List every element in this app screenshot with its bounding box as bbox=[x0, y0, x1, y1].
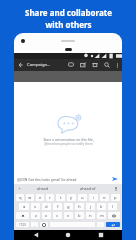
button[interactable]: n bbox=[86, 212, 95, 219]
button[interactable]: s bbox=[31, 203, 40, 210]
staticText: x bbox=[45, 213, 48, 219]
button[interactable]: Send bbox=[111, 175, 119, 183]
button[interactable]: m bbox=[97, 212, 106, 219]
staticText: p bbox=[114, 195, 117, 201]
staticText: g bbox=[67, 204, 70, 210]
staticText: a bbox=[23, 204, 26, 210]
staticText: ahead of bbox=[80, 186, 96, 191]
button[interactable]: e bbox=[36, 194, 44, 201]
button[interactable]: ahead bbox=[23, 184, 63, 193]
button[interactable]: w bbox=[26, 194, 34, 201]
button[interactable]: g bbox=[64, 203, 73, 210]
staticText: with others bbox=[45, 19, 92, 30]
button[interactable]: i bbox=[89, 194, 98, 201]
button[interactable]: x bbox=[42, 212, 51, 219]
button[interactable]: p bbox=[111, 194, 120, 201]
staticText: r bbox=[49, 195, 51, 201]
button[interactable]: d bbox=[42, 203, 51, 210]
staticText: q bbox=[19, 195, 22, 201]
button[interactable]: k bbox=[97, 203, 106, 210]
staticText: u bbox=[81, 195, 84, 201]
staticText: n bbox=[89, 213, 92, 219]
button[interactable]: Back bbox=[14, 59, 27, 71]
button[interactable]: l bbox=[108, 203, 117, 210]
button[interactable]: Delete bbox=[89, 59, 101, 71]
staticText: l bbox=[112, 204, 114, 210]
button[interactable]: Clipboard bbox=[16, 184, 23, 193]
button[interactable]: u bbox=[78, 194, 87, 201]
button[interactable]: o bbox=[100, 194, 109, 201]
button[interactable]: q bbox=[16, 194, 24, 201]
button[interactable]: r bbox=[46, 194, 54, 201]
button[interactable]: j bbox=[86, 203, 95, 210]
button[interactable]: ahead of bbox=[63, 184, 112, 193]
button[interactable]: Comment bbox=[65, 59, 77, 71]
staticText: m bbox=[100, 213, 104, 219]
button[interactable]: Home bbox=[57, 230, 79, 240]
button[interactable]: y bbox=[67, 194, 76, 201]
button[interactable]: v bbox=[64, 212, 73, 219]
button[interactable]: b bbox=[75, 212, 84, 219]
button[interactable]: More options bbox=[113, 59, 122, 71]
button[interactable]: Search bbox=[101, 59, 113, 71]
button[interactable]: Back bbox=[25, 230, 47, 240]
button[interactable]: @JOIN Got this looks great! Go ahead bbox=[17, 177, 111, 182]
staticText: j bbox=[90, 204, 92, 210]
staticText: z bbox=[35, 213, 37, 219]
staticText: d bbox=[45, 204, 48, 210]
staticText: e bbox=[39, 195, 42, 201]
staticText: w bbox=[28, 195, 32, 201]
button[interactable]: ?123 bbox=[16, 222, 29, 227]
staticText: o bbox=[103, 195, 106, 201]
button[interactable]: . bbox=[97, 222, 104, 227]
staticText: v bbox=[67, 213, 70, 219]
staticText: i bbox=[93, 195, 95, 201]
button[interactable]: , bbox=[31, 222, 38, 227]
button[interactable]: c bbox=[53, 212, 62, 219]
button[interactable]: t bbox=[56, 194, 65, 201]
staticText: . bbox=[100, 222, 101, 227]
staticText: y bbox=[70, 195, 73, 201]
staticText: t bbox=[60, 195, 62, 201]
button[interactable]: Campaign... bbox=[27, 62, 51, 68]
button[interactable]: Share bbox=[77, 59, 89, 71]
staticText: b bbox=[78, 213, 81, 219]
button[interactable]: Recents bbox=[90, 230, 112, 240]
staticText: k bbox=[100, 204, 103, 210]
staticText: Start a conversation on this file, bbox=[43, 137, 94, 142]
staticText: , bbox=[34, 222, 35, 227]
button[interactable]: Shift bbox=[16, 212, 29, 219]
button[interactable]: h bbox=[75, 203, 84, 210]
staticText: h bbox=[78, 204, 81, 210]
staticText: @mention people to notify them bbox=[44, 142, 93, 146]
button[interactable]: z bbox=[31, 212, 40, 219]
button[interactable]: Enter bbox=[106, 222, 120, 227]
staticText: Share and collaborate bbox=[25, 7, 112, 18]
button[interactable]: Backspace bbox=[108, 212, 120, 219]
button[interactable]: Voice input bbox=[112, 184, 120, 193]
staticText: ahead bbox=[37, 186, 49, 191]
button[interactable]: a bbox=[19, 203, 29, 210]
staticText: ?123 bbox=[19, 223, 26, 227]
button[interactable]: Emoji bbox=[40, 222, 48, 227]
staticText: c bbox=[56, 213, 59, 219]
staticText: f bbox=[57, 204, 59, 210]
staticText: s bbox=[34, 204, 37, 210]
button[interactable]: f bbox=[53, 203, 62, 210]
